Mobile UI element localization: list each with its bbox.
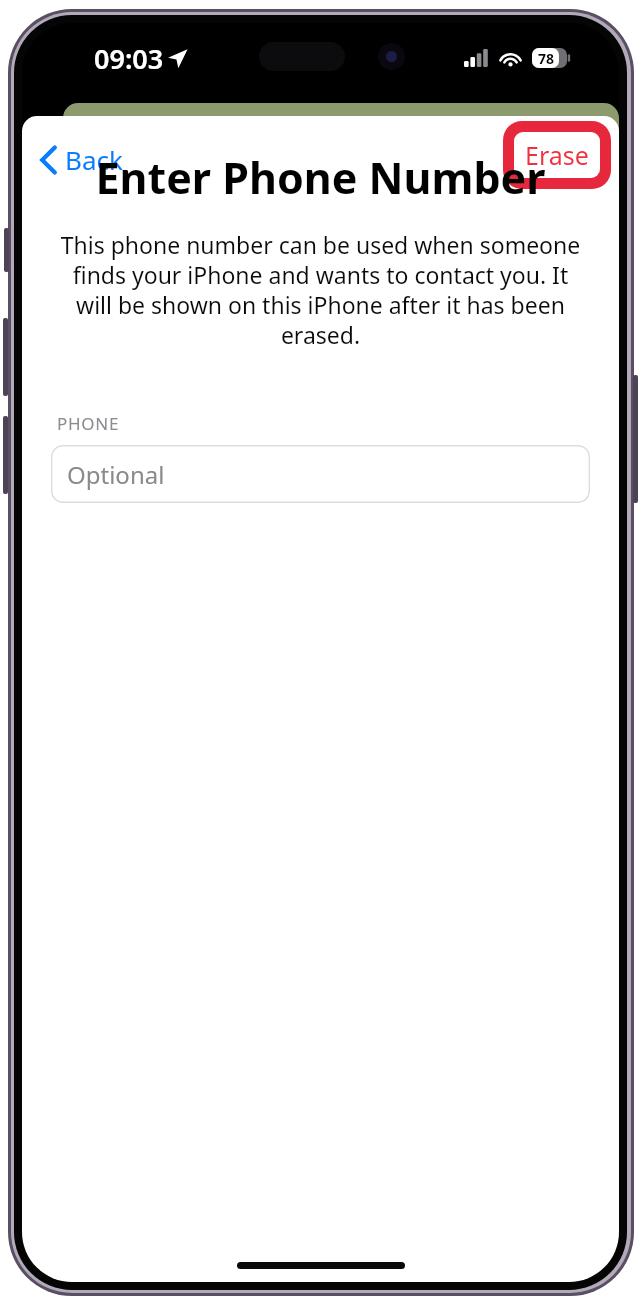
button[interactable]: Phone number input	[51, 445, 590, 503]
staticText: 78	[538, 49, 555, 68]
button[interactable]: Back	[30, 133, 133, 186]
button[interactable]: Erase	[503, 121, 611, 189]
staticText: 09:03	[94, 40, 164, 77]
staticText: Erase	[525, 138, 589, 172]
staticText: PHONE	[57, 412, 120, 435]
staticText: Enter Phone Number	[51, 148, 590, 207]
staticText: Optional	[67, 458, 165, 491]
staticText: This phone number can be used when someo…	[53, 229, 588, 350]
staticText: Back	[65, 142, 123, 177]
